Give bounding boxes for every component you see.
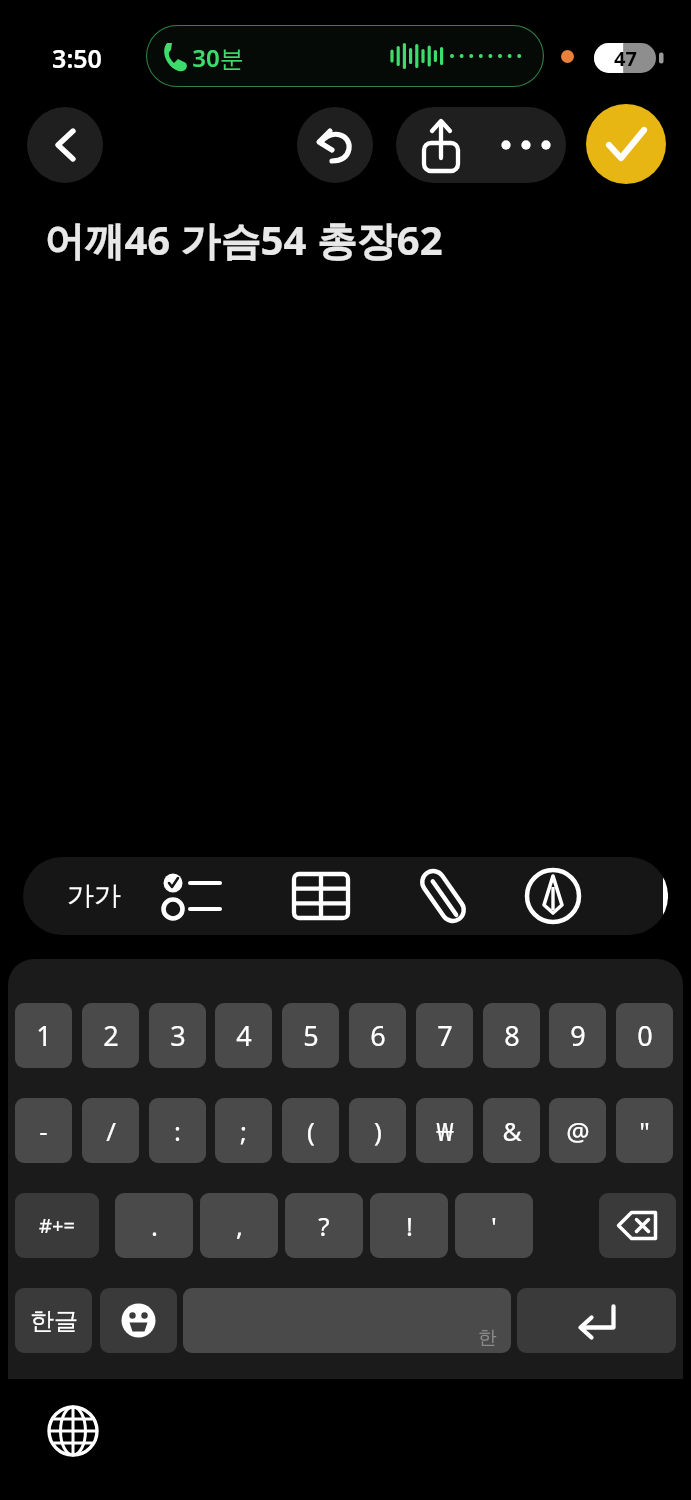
button[interactable]: Done [586,104,666,184]
button[interactable]: ) [349,1098,406,1163]
button[interactable]: More formatting [637,857,668,935]
button[interactable]: 5 [282,1003,339,1068]
staticText: ; [240,1113,247,1148]
staticText: - [39,1113,48,1148]
staticText: 한글 [30,1306,78,1336]
staticText: / [106,1113,116,1148]
button[interactable]: 3 [149,1003,206,1068]
button[interactable]: Emoji [100,1288,177,1353]
button[interactable]: 1 [15,1003,72,1068]
button[interactable]: Back [27,107,103,183]
button[interactable]: Checklist [155,857,235,935]
button[interactable]: , [200,1193,278,1258]
staticText: 2 [103,1017,119,1054]
staticText: : [174,1113,181,1148]
button[interactable]: 2 [82,1003,139,1068]
button[interactable]: Undo [297,107,373,183]
staticText: 한 [478,1326,497,1350]
staticText: 9 [570,1017,586,1054]
staticText: . [151,1208,158,1243]
staticText: 0 [637,1017,653,1054]
staticText: ( [307,1113,315,1148]
button[interactable]: ' [455,1193,533,1258]
staticText: 어깨46 가슴54 총장62 [44,212,443,267]
staticText: ? [318,1208,330,1243]
button[interactable]: 9 [549,1003,606,1068]
button[interactable]: 0 [616,1003,673,1068]
staticText: 30분 [192,41,244,74]
button[interactable]: & [483,1098,540,1163]
staticText: ' [491,1208,497,1243]
button[interactable]: 가가 [51,857,137,935]
button[interactable]: : [149,1098,206,1163]
staticText: ! [406,1208,413,1243]
staticText: 가가 [67,879,121,913]
button[interactable]: / [82,1098,139,1163]
staticText: ) [374,1113,382,1148]
staticText: 5 [303,1017,319,1054]
staticText: 47 [614,45,637,72]
button[interactable]: ( [282,1098,339,1163]
button[interactable]: 8 [483,1003,540,1068]
staticText: 1 [36,1017,52,1054]
staticText: 3 [170,1017,186,1054]
button[interactable]: Ongoing call 30 minutes [146,25,544,87]
staticText: @ [566,1113,590,1148]
staticText: 3:50 [52,41,102,75]
button[interactable]: @ [549,1098,606,1163]
button[interactable]: #+= [15,1193,99,1258]
button[interactable]: Change keyboard language [43,1401,103,1461]
button[interactable]: Space [183,1288,511,1353]
button[interactable]: 6 [349,1003,406,1068]
button[interactable]: Attach file [403,857,483,935]
staticText: " [639,1113,650,1148]
button[interactable]: Table [281,857,361,935]
staticText: #+= [39,1212,75,1239]
button[interactable]: 7 [416,1003,473,1068]
button[interactable]: ; [215,1098,272,1163]
button[interactable]: ? [285,1193,363,1258]
button[interactable]: Enter [517,1288,676,1353]
button[interactable]: 4 [215,1003,272,1068]
button[interactable]: " [616,1098,673,1163]
button[interactable]: 한글 [15,1288,92,1353]
button[interactable]: ! [370,1193,448,1258]
button[interactable]: Share [396,107,486,183]
staticText: 6 [370,1017,386,1054]
staticText: & [502,1113,522,1148]
staticText: , [236,1208,243,1243]
button[interactable]: Markup [513,857,593,935]
button[interactable]: More options [486,107,566,183]
staticText: 8 [504,1017,520,1054]
button[interactable]: - [15,1098,72,1163]
button[interactable]: Backspace [599,1193,676,1258]
staticText: 4 [236,1017,252,1054]
staticText: 7 [437,1017,453,1054]
staticText: ₩ [436,1113,454,1148]
button[interactable]: ₩ [416,1098,473,1163]
button[interactable]: . [115,1193,193,1258]
